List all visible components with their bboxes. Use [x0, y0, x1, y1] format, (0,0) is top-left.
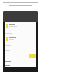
- button[interactable]: [5, 24, 36, 29]
- button[interactable]: App bar: [3, 11, 38, 22]
- button[interactable]: Primary action: [29, 54, 36, 58]
- button[interactable]: [5, 37, 36, 42]
